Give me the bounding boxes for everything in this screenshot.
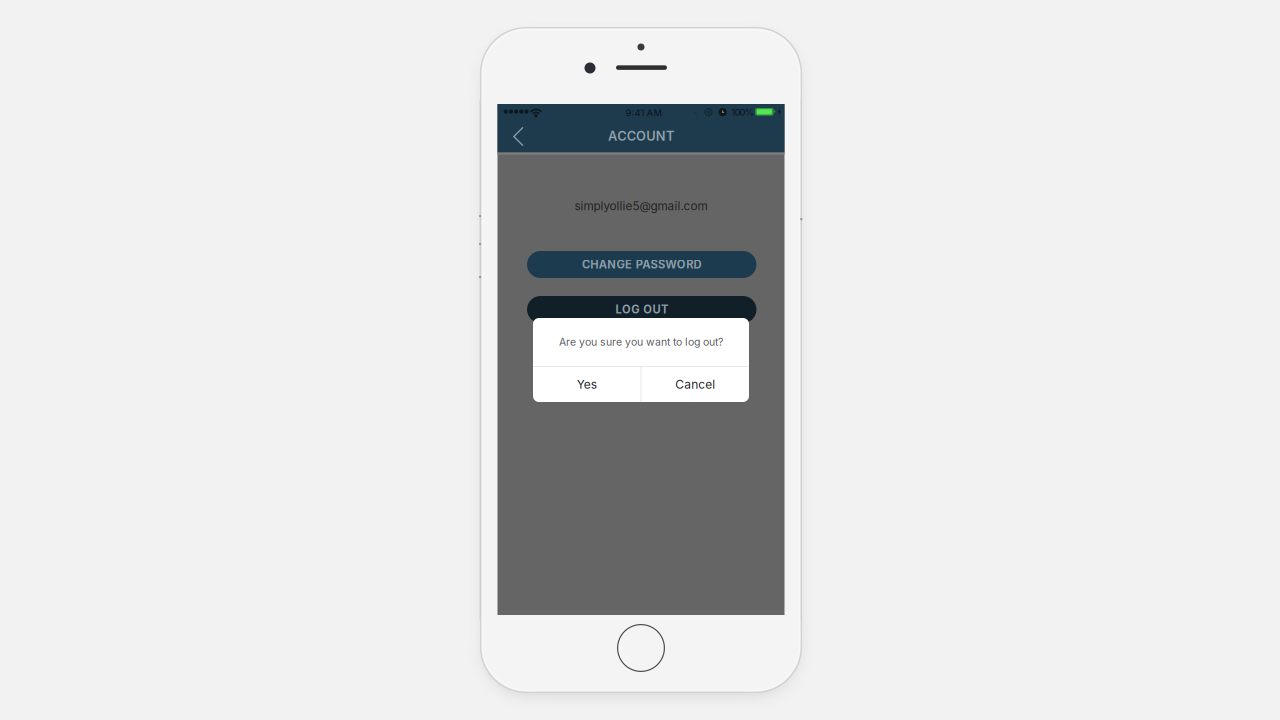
staticText: ACCOUNT [608,128,674,144]
staticText: LOG OUT [615,303,668,316]
staticText: 100% [731,107,754,118]
staticText: Are you sure you want to log out? [559,336,723,348]
staticText: Yes [577,377,597,392]
staticText: Cancel [675,377,715,392]
staticText: 9:41 AM [625,107,662,118]
staticText: simplyollie5@gmail.com [574,199,707,213]
button[interactable]: Yes [533,367,640,402]
button[interactable]: Cancel [641,367,749,402]
staticText: CHANGE PASSWORD [582,258,701,271]
